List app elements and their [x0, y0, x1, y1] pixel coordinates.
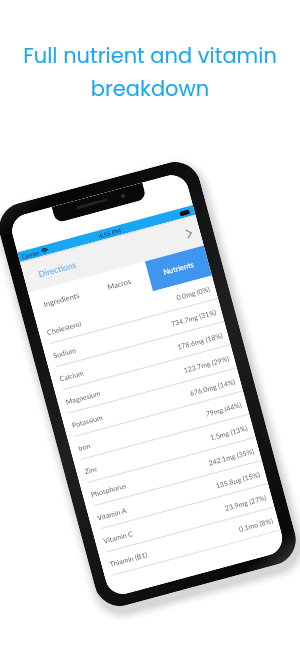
- staticText: 123.7mg (29%): [183, 354, 230, 374]
- button[interactable]: Ingredients: [28, 277, 94, 323]
- staticText: Sodium: [52, 345, 78, 359]
- staticText: 676.0mg (14%): [189, 377, 236, 397]
- staticText: Zinc: [84, 464, 99, 475]
- button[interactable]: Calcium: [49, 322, 231, 392]
- staticText: Magnesium: [65, 389, 102, 406]
- button[interactable]: Thiamin (B1): [99, 507, 281, 578]
- staticText: Thiamin (B1): [109, 550, 148, 568]
- staticText: Calcium: [58, 368, 85, 382]
- button[interactable]: Iron: [67, 391, 249, 462]
- staticText: 734.7mg (31%): [170, 308, 218, 328]
- staticText: Macros: [106, 277, 133, 292]
- button[interactable]: Nutrients: [145, 245, 212, 291]
- button[interactable]: Cholesterol: [36, 275, 218, 346]
- button[interactable]: Potassium: [61, 368, 243, 439]
- staticText: 178.6mg (18%): [176, 331, 224, 351]
- button[interactable]: Vitamin C: [92, 484, 274, 555]
- button[interactable]: Macros: [86, 261, 153, 307]
- button[interactable]: Magnesium: [55, 345, 237, 416]
- staticText: 135.8µg (15%): [215, 470, 261, 490]
- staticText: 1.5mg (13%): [209, 423, 249, 441]
- staticText: 23.9mg (27%): [224, 493, 268, 512]
- button[interactable]: Vitamin A: [86, 461, 268, 531]
- button[interactable]: Directions: [30, 260, 78, 281]
- staticText: Phosphorus: [90, 481, 128, 498]
- staticText: Nutrients: [162, 260, 195, 277]
- staticText: Full nutrient and vitamin breakdown: [23, 41, 277, 104]
- staticText: 0.0mg (0%): [175, 284, 211, 301]
- staticText: 0.1mo (8%): [238, 516, 274, 533]
- button[interactable]: More: [182, 226, 196, 240]
- button[interactable]: Zinc: [74, 414, 256, 485]
- staticText: Vitamin C: [102, 529, 134, 545]
- staticText: Potassium: [71, 413, 104, 429]
- staticText: Iron: [77, 441, 92, 452]
- button[interactable]: Phosphorus: [80, 438, 262, 508]
- staticText: Carrier: [21, 249, 41, 260]
- staticText: 242.1mg (35%): [208, 447, 255, 467]
- button[interactable]: Sodium: [42, 299, 224, 369]
- staticText: 4:55 PM: [98, 227, 122, 239]
- staticText: Cholesterol: [46, 319, 83, 336]
- staticText: Ingredients: [43, 291, 81, 309]
- staticText: 79mg (44%): [205, 400, 242, 418]
- staticText: Vitamin A: [96, 506, 128, 522]
- staticText: Directions: [37, 260, 78, 279]
